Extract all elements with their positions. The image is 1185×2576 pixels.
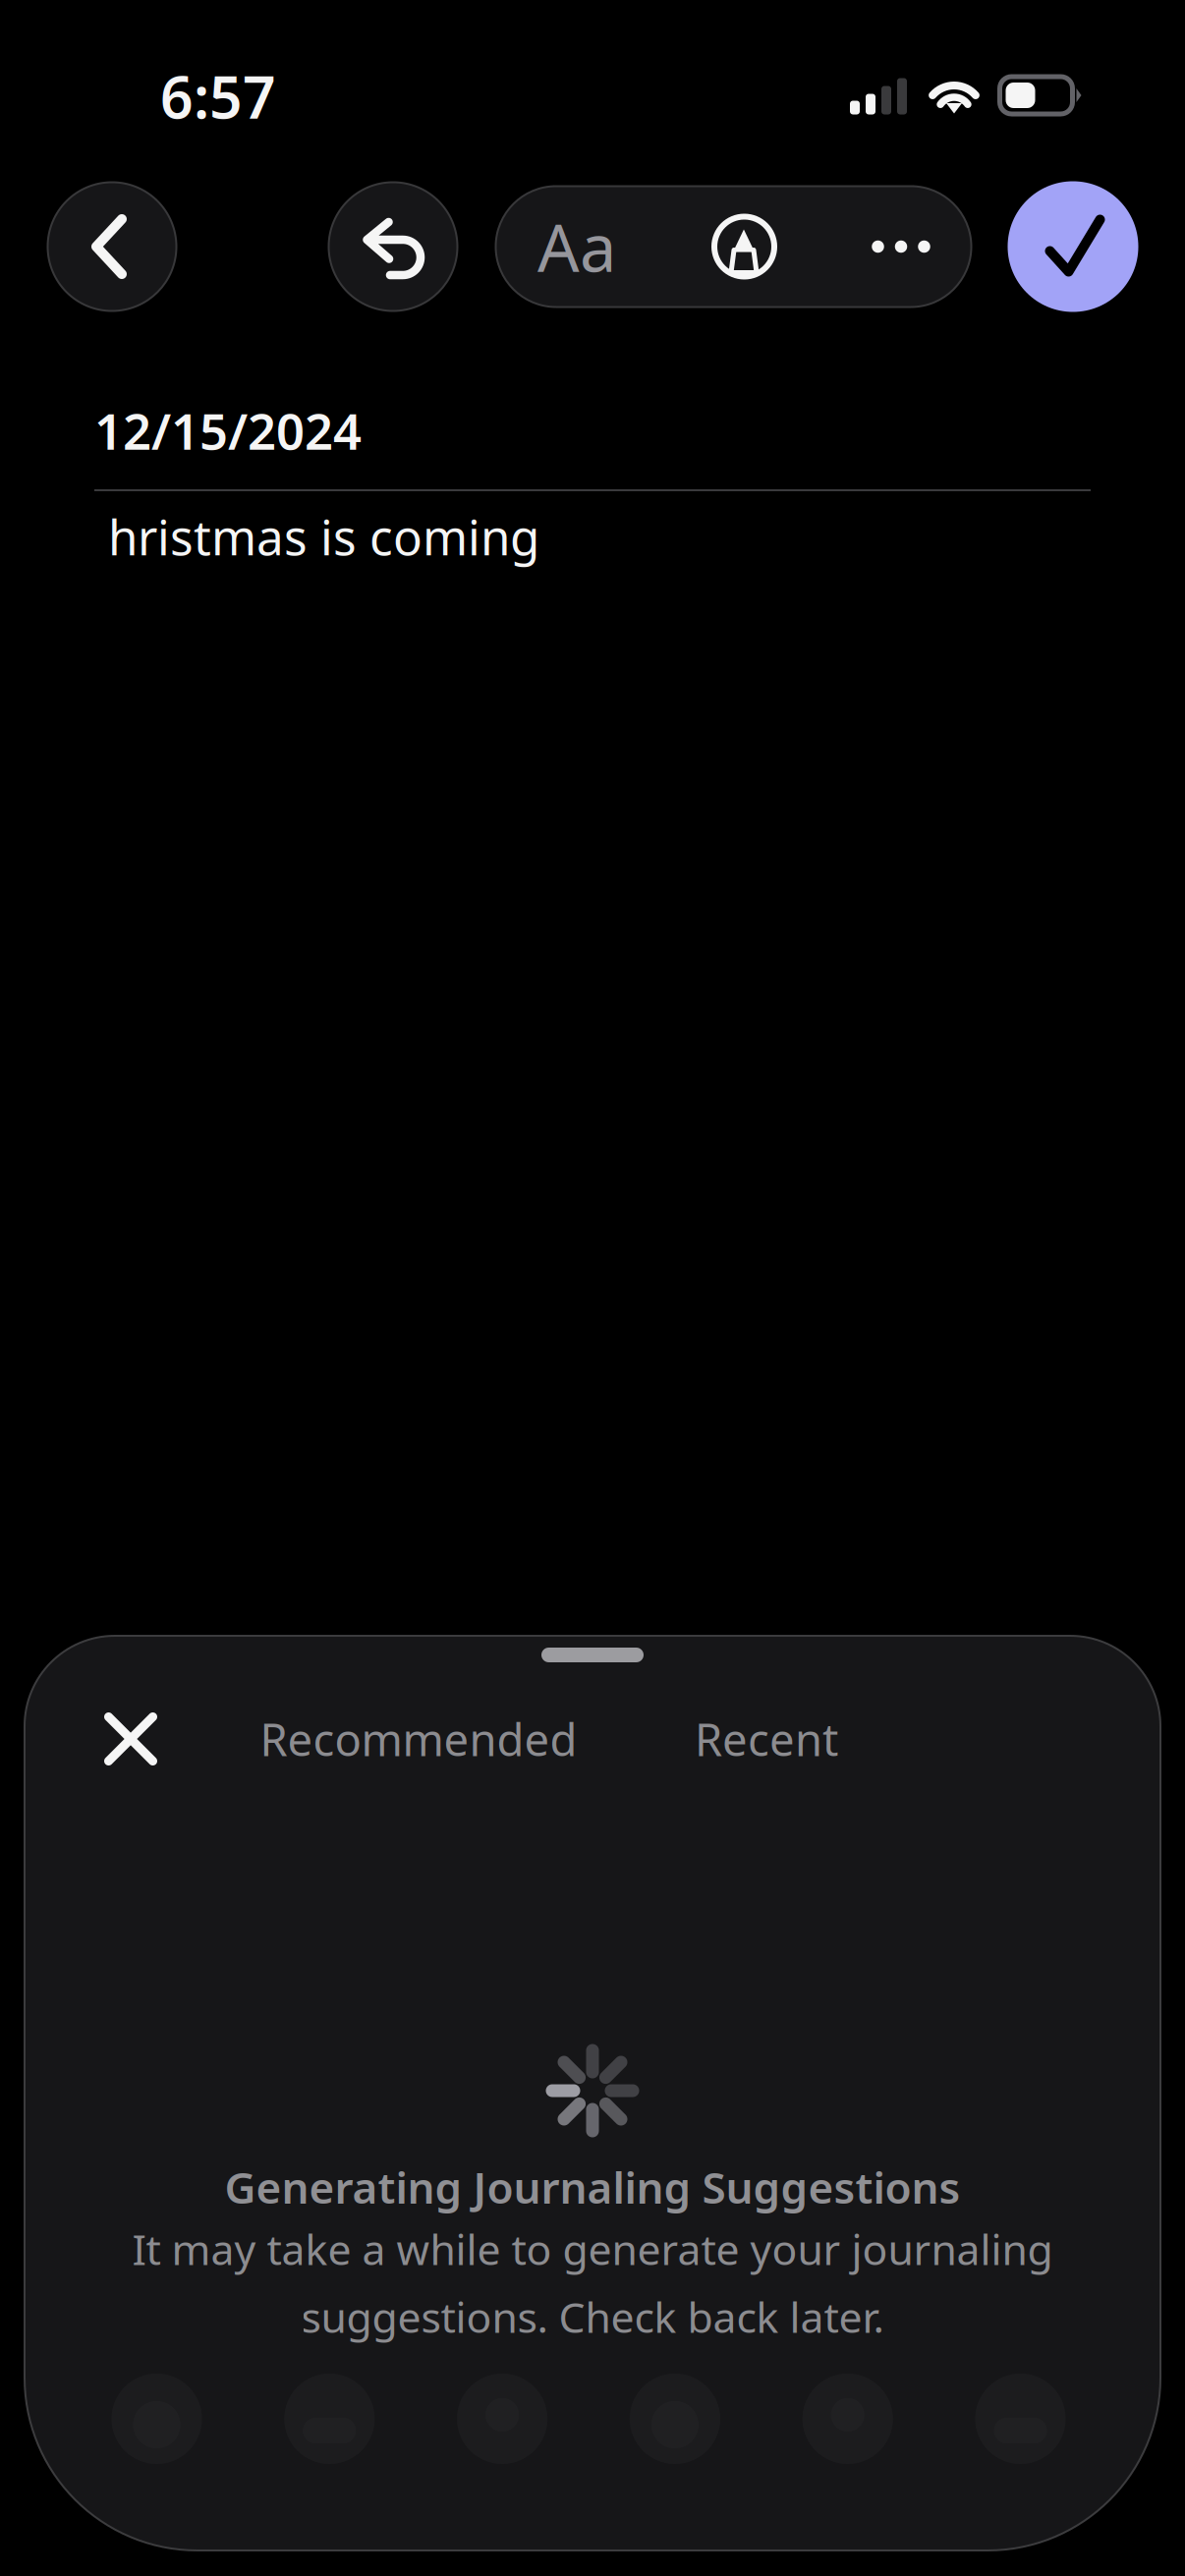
- staticText: Recommended: [260, 1709, 577, 1769]
- staticText: 6:57: [160, 58, 276, 134]
- staticText: Generating Journaling Suggestions: [225, 2158, 960, 2216]
- button[interactable]: Markup: [658, 186, 831, 307]
- button[interactable]: Done: [1008, 181, 1138, 312]
- staticText: Recent: [695, 1709, 838, 1769]
- staticText: hristmas is coming: [108, 504, 539, 569]
- staticText: 12/15/2024: [94, 397, 362, 463]
- staticText: suggestions. Check back later.: [301, 2289, 884, 2345]
- button[interactable]: Recent: [673, 1697, 860, 1781]
- button[interactable]: Text format: [496, 186, 658, 307]
- button[interactable]: Recommended: [256, 1697, 581, 1781]
- button[interactable]: Back: [48, 182, 176, 311]
- staticText: It may take a while to generate your jou…: [132, 2221, 1053, 2277]
- staticText: Aa: [537, 203, 616, 290]
- button[interactable]: Undo: [329, 182, 457, 311]
- button[interactable]: More: [831, 186, 971, 307]
- button[interactable]: Close: [84, 1692, 178, 1786]
